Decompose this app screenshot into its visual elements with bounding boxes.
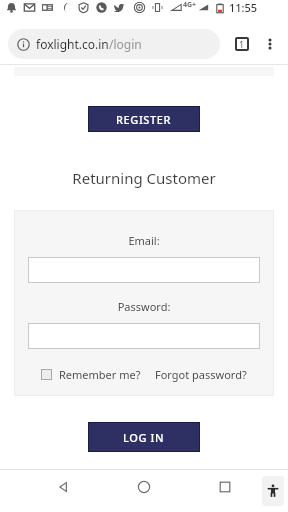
- staticText: Returning Customer: [0, 168, 288, 188]
- button[interactable]: Forgot password?: [155, 367, 247, 382]
- staticText: Password:: [28, 299, 260, 314]
- button[interactable]: Tabs, 1 open: [228, 30, 256, 58]
- staticText: 1: [239, 38, 245, 50]
- button[interactable]: foxlight.co.in: [8, 29, 220, 59]
- staticText: LOG IN: [123, 430, 165, 445]
- button[interactable]: Back: [46, 470, 80, 504]
- staticText: /login: [109, 36, 142, 52]
- staticText: 11:55: [229, 0, 258, 15]
- staticText: Remember me?: [59, 367, 141, 382]
- staticText: Email:: [28, 233, 260, 248]
- button[interactable]: Password field: [28, 323, 260, 349]
- button[interactable]: More options: [256, 30, 284, 58]
- staticText: 4G+: [183, 0, 197, 10]
- button[interactable]: Email field: [28, 257, 260, 283]
- button[interactable]: Recent apps: [208, 470, 242, 504]
- staticText: REGISTER: [116, 112, 172, 127]
- button[interactable]: LOG IN: [88, 422, 200, 452]
- button[interactable]: Home: [127, 470, 161, 504]
- staticText: foxlight.co.in: [36, 36, 109, 52]
- button[interactable]: Accessibility menu: [262, 476, 284, 506]
- button[interactable]: Remember me?: [41, 367, 141, 382]
- button[interactable]: REGISTER: [88, 106, 200, 132]
